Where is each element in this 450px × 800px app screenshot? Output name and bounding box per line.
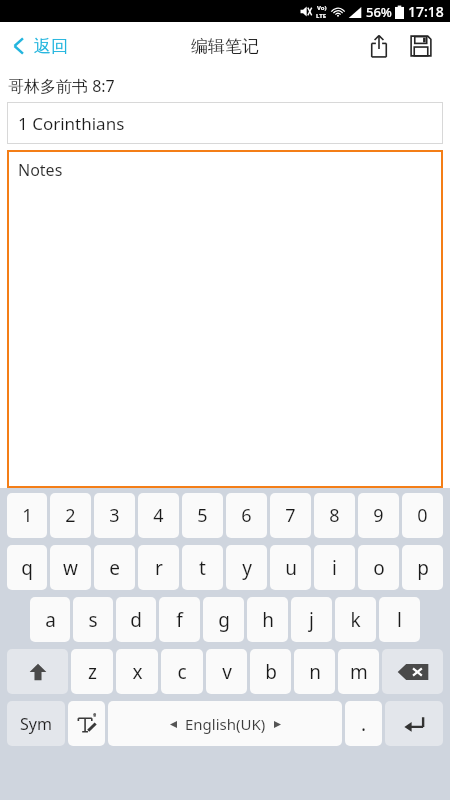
staticText: d: [130, 607, 142, 633]
button[interactable]: Shift: [7, 649, 68, 694]
staticText: q: [21, 555, 33, 581]
staticText: h: [262, 607, 274, 633]
button[interactable]: 5: [182, 493, 223, 538]
button[interactable]: u: [270, 545, 311, 590]
button[interactable]: b: [250, 649, 291, 694]
button[interactable]: 1: [7, 493, 47, 538]
staticText: 3: [109, 503, 120, 528]
button[interactable]: o: [358, 545, 399, 590]
button[interactable]: Notes: [7, 150, 443, 488]
staticText: n: [309, 659, 321, 685]
staticText: y: [242, 555, 252, 581]
button[interactable]: Backspace: [382, 649, 443, 694]
button[interactable]: f: [159, 597, 200, 642]
button[interactable]: 8: [314, 493, 355, 538]
staticText: i: [332, 555, 337, 581]
staticText: b: [265, 659, 277, 685]
button[interactable]: 0: [402, 493, 443, 538]
button[interactable]: 返回: [10, 34, 68, 58]
button[interactable]: 7: [270, 493, 311, 538]
staticText: s: [88, 607, 98, 633]
staticText: m: [350, 659, 368, 685]
staticText: w: [63, 555, 78, 581]
staticText: 0: [417, 503, 428, 528]
button[interactable]: p: [402, 545, 443, 590]
button[interactable]: c: [161, 649, 203, 694]
staticText: r: [155, 555, 163, 581]
staticText: a: [45, 607, 56, 633]
staticText: f: [176, 607, 183, 633]
button[interactable]: 2: [50, 493, 91, 538]
button[interactable]: .: [345, 701, 382, 746]
button[interactable]: m: [338, 649, 379, 694]
button[interactable]: Save: [400, 25, 442, 67]
button[interactable]: 3: [94, 493, 135, 538]
staticText: j: [309, 607, 314, 633]
staticText: 1: [22, 503, 33, 528]
button[interactable]: 9: [358, 493, 399, 538]
staticText: u: [285, 555, 297, 581]
button[interactable]: i: [314, 545, 355, 590]
staticText: Notes: [18, 159, 63, 181]
button[interactable]: 1 Corinthians: [7, 102, 443, 144]
staticText: k: [350, 607, 361, 633]
button[interactable]: Sym: [7, 701, 65, 746]
staticText: v: [222, 659, 232, 685]
button[interactable]: d: [116, 597, 156, 642]
button[interactable]: h: [247, 597, 288, 642]
button[interactable]: w: [50, 545, 91, 590]
staticText: Vo): [317, 4, 327, 12]
staticText: 哥林多前书 8:7: [8, 75, 115, 97]
staticText: 7: [285, 503, 296, 528]
button[interactable]: Share: [358, 25, 400, 67]
button[interactable]: q: [7, 545, 47, 590]
staticText: l: [397, 607, 402, 633]
staticText: 1 Corinthians: [18, 112, 125, 135]
staticText: Sym: [20, 713, 52, 735]
button[interactable]: l: [379, 597, 420, 642]
staticText: 8: [329, 503, 340, 528]
button[interactable]: 6: [226, 493, 267, 538]
staticText: e: [109, 555, 120, 581]
staticText: t: [199, 555, 206, 581]
button[interactable]: x: [116, 649, 158, 694]
staticText: o: [373, 555, 385, 581]
staticText: x: [132, 659, 143, 685]
staticText: LTE: [316, 12, 327, 20]
staticText: p: [417, 555, 429, 581]
staticText: 4: [153, 503, 164, 528]
button[interactable]: z: [71, 649, 113, 694]
staticText: 6: [241, 503, 252, 528]
staticText: English(UK): [185, 714, 266, 734]
button[interactable]: n: [294, 649, 335, 694]
button[interactable]: g: [203, 597, 244, 642]
button[interactable]: Enter: [385, 701, 443, 746]
button[interactable]: y: [226, 545, 267, 590]
button[interactable]: Handwriting input: [68, 701, 105, 746]
staticText: 2: [65, 503, 76, 528]
staticText: 返回: [34, 36, 68, 57]
staticText: g: [218, 607, 230, 633]
staticText: c: [177, 659, 187, 685]
button[interactable]: t: [182, 545, 223, 590]
button[interactable]: English(UK): [108, 701, 342, 746]
staticText: 17:18: [408, 2, 444, 21]
button[interactable]: k: [335, 597, 376, 642]
staticText: 编辑笔记: [191, 36, 259, 57]
staticText: z: [88, 659, 97, 685]
staticText: 9: [373, 503, 384, 528]
staticText: 56%: [366, 3, 392, 21]
button[interactable]: v: [206, 649, 247, 694]
staticText: 5: [197, 503, 208, 528]
button[interactable]: a: [30, 597, 70, 642]
button[interactable]: r: [138, 545, 179, 590]
button[interactable]: 4: [138, 493, 179, 538]
button[interactable]: s: [73, 597, 113, 642]
button[interactable]: e: [94, 545, 135, 590]
staticText: .: [361, 711, 367, 737]
button[interactable]: j: [291, 597, 332, 642]
